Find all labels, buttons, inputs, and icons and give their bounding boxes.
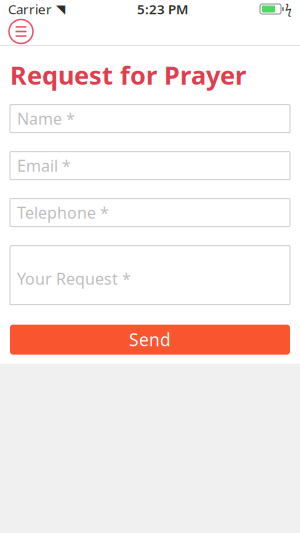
staticText: Send (129, 328, 171, 351)
staticText: ◥ (52, 2, 65, 16)
staticText: 5:23 PM (137, 0, 188, 18)
staticText: Your Request * (17, 268, 131, 289)
staticText: Telephone * (17, 202, 109, 223)
button[interactable]: Menu (2, 18, 40, 45)
staticText: Request for Prayer (10, 58, 246, 92)
staticText: Name * (17, 108, 75, 129)
staticText: ϟ (285, 1, 292, 17)
staticText: Email * (17, 155, 71, 176)
staticText: Carrier (8, 0, 52, 18)
button[interactable]: Send (10, 325, 290, 355)
